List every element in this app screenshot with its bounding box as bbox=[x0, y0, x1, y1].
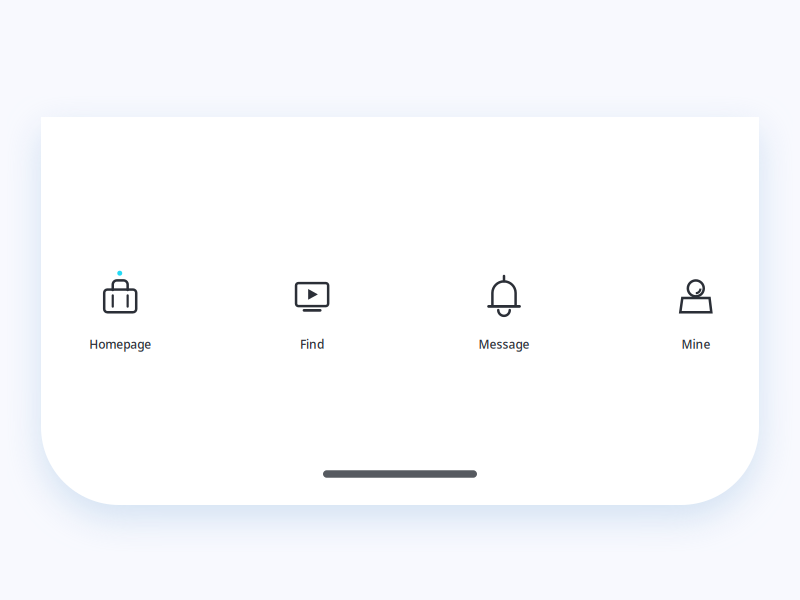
button[interactable]: Find bbox=[252, 259, 372, 363]
staticText: Message bbox=[478, 336, 529, 352]
staticText: Find bbox=[300, 336, 324, 352]
button[interactable]: Homepage bbox=[60, 259, 180, 363]
button[interactable]: Message bbox=[444, 259, 564, 363]
button[interactable]: Mine bbox=[636, 259, 756, 363]
staticText: Mine bbox=[681, 336, 710, 352]
staticText: Homepage bbox=[89, 336, 151, 352]
